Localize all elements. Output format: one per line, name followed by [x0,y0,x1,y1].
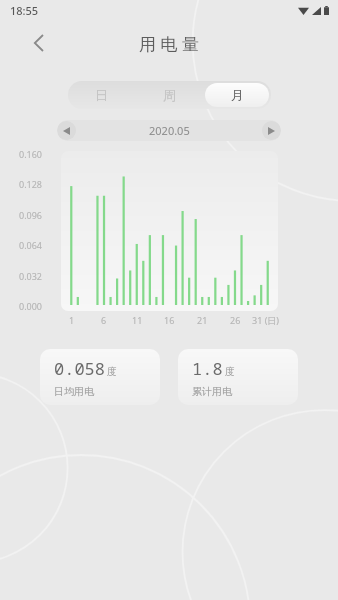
staticText: 月 [231,87,244,103]
staticText: 0.058 [54,357,105,380]
staticText: 2020.05 [149,123,190,138]
staticText: 累计用电 [192,385,232,398]
staticText: 18:55 [10,3,39,18]
staticText: 0.032 [19,270,43,282]
staticText: 16 [164,314,175,326]
staticText: 1.8 [192,357,223,380]
staticText: 11 [132,314,143,326]
button[interactable]: 月 [205,83,269,107]
staticText: 0.128 [19,178,43,190]
staticText: 21 [197,314,208,326]
button[interactable]: Previous month [57,121,76,140]
staticText: 日 [95,87,108,103]
staticText: 日均用电 [54,385,94,398]
staticText: 31 (日) [252,314,280,326]
button[interactable]: 日 [70,83,133,107]
staticText: 0.064 [19,239,43,251]
staticText: 6 [101,314,107,326]
staticText: 度 [107,365,117,378]
button[interactable]: 1.8 [178,349,298,405]
staticText: 度 [225,365,235,378]
staticText: 0.160 [19,148,43,160]
button[interactable]: 周 [137,83,201,107]
staticText: 用 电 量 [139,32,199,55]
staticText: 26 [230,314,241,326]
staticText: 1 [69,314,75,326]
button[interactable]: 0.058 [40,349,160,405]
staticText: 0.096 [19,209,43,221]
staticText: 周 [163,87,176,103]
button[interactable]: Back [22,27,54,59]
staticText: 0.000 [19,300,43,312]
button[interactable]: Next month [262,121,281,140]
